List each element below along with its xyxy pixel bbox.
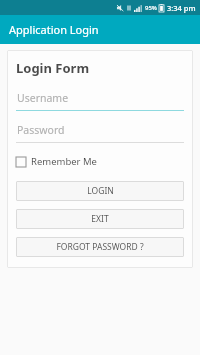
staticText: Login Form: [16, 59, 90, 77]
button[interactable]: FORGOT PASSWORD ?: [16, 237, 184, 257]
button[interactable]: Username: [16, 91, 184, 111]
staticText: Username: [17, 91, 69, 105]
staticText: 3:34 pm: [167, 3, 196, 13]
staticText: Password: [17, 123, 65, 137]
button[interactable]: EXIT: [16, 209, 184, 229]
button[interactable]: LOGIN: [16, 181, 184, 201]
staticText: Remember Me: [31, 155, 97, 168]
button[interactable]: Password: [16, 123, 184, 143]
staticText: 95%: [145, 4, 157, 12]
staticText: Application Login: [9, 22, 99, 37]
staticText: FORGOT PASSWORD ?: [56, 241, 144, 253]
button[interactable]: Remember Me: [16, 155, 97, 168]
staticText: LOGIN: [87, 185, 114, 197]
staticText: EXIT: [91, 213, 109, 225]
